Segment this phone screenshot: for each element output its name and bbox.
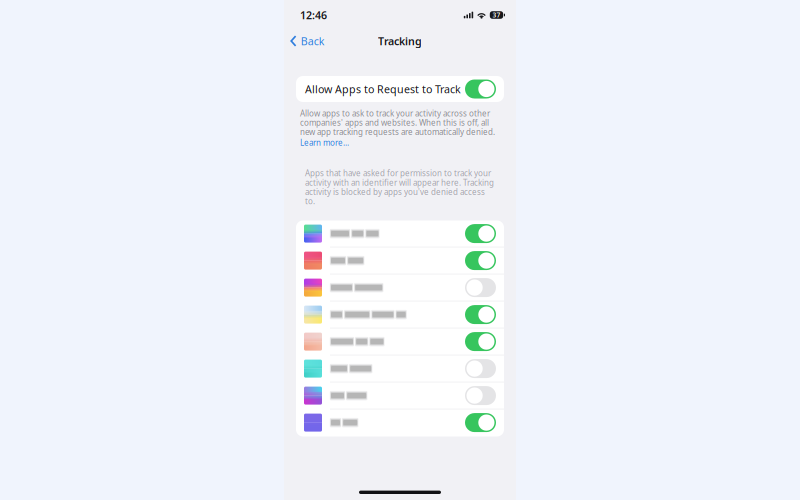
staticText: Tracking [378,34,422,48]
button[interactable]: Back [286,30,329,52]
button[interactable] [296,409,504,436]
button[interactable] [296,382,504,409]
staticText: Back [301,34,325,48]
button[interactable] [296,328,504,355]
button[interactable] [296,301,504,328]
staticText: Allow apps to ask to track your activity… [300,108,495,137]
staticText: Allow Apps to Request to Track [305,82,461,96]
staticText: 12:46 [300,8,327,22]
staticText: 37 [492,11,500,19]
button[interactable] [296,247,504,274]
button[interactable]: Allow Apps to Request to Track [296,76,504,102]
button[interactable]: Learn more... [300,137,349,148]
staticText: Learn more... [300,137,349,148]
button[interactable] [296,274,504,301]
button[interactable] [296,220,504,247]
staticText: Apps that have asked for permission to t… [305,168,494,206]
button[interactable] [296,355,504,382]
